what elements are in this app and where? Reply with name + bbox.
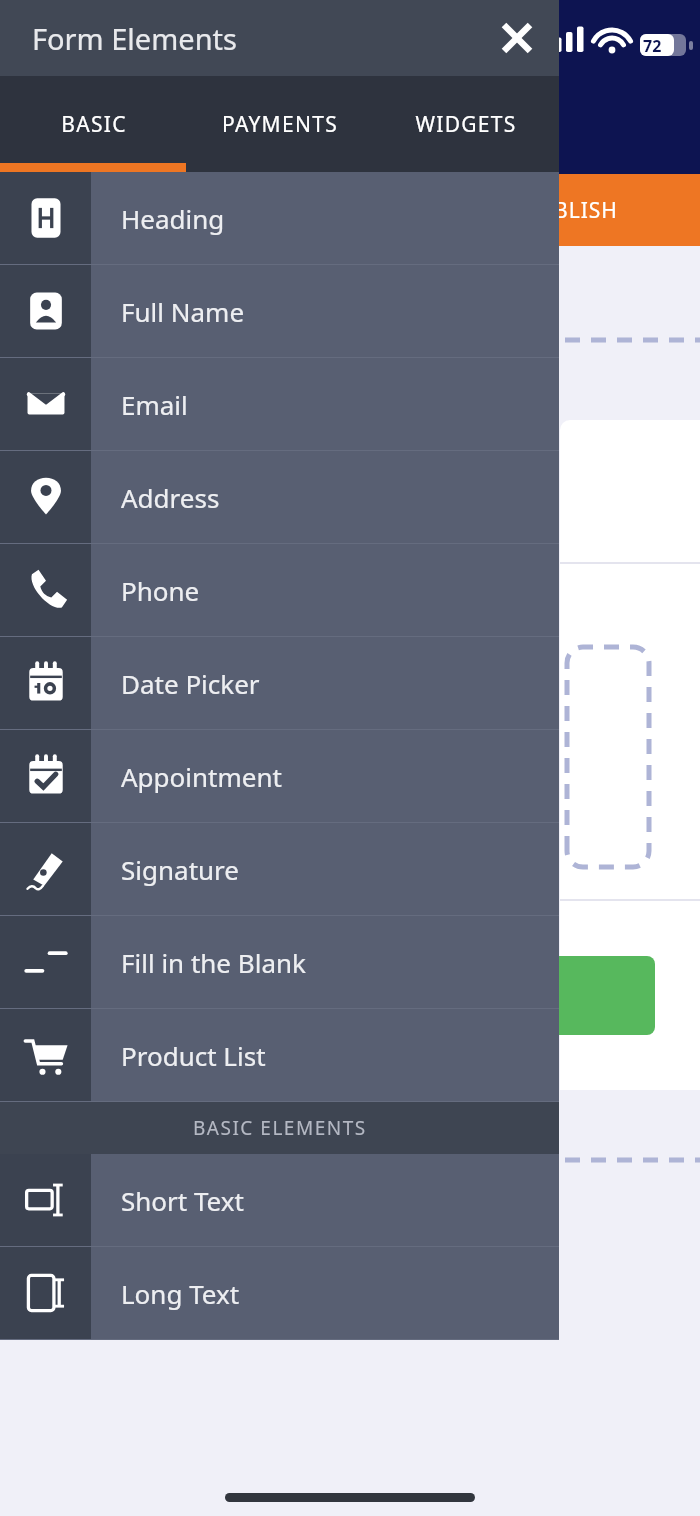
staticText: PAYMENTS xyxy=(222,110,338,139)
staticText: BASIC xyxy=(61,110,127,139)
staticText: Phone xyxy=(121,573,200,608)
button[interactable]: PUBLISH xyxy=(0,174,700,246)
button[interactable]: Phone xyxy=(0,544,559,636)
button[interactable]: Close xyxy=(489,10,545,66)
staticText: Short Text xyxy=(121,1183,244,1218)
staticText: Appointment xyxy=(121,759,282,794)
button[interactable]: BASIC xyxy=(0,76,187,172)
staticText: PUBLISH xyxy=(524,196,618,225)
button[interactable]: Full Name xyxy=(0,265,559,357)
button[interactable]: Address xyxy=(0,451,559,543)
button[interactable]: Heading xyxy=(0,172,559,264)
button[interactable]: Appointment xyxy=(0,730,559,822)
button[interactable]: Email xyxy=(0,358,559,450)
staticText: Form Elements xyxy=(32,19,237,58)
button[interactable]: Signature xyxy=(0,823,559,915)
staticText: Heading xyxy=(121,201,225,236)
staticText: 1:09 xyxy=(55,24,111,62)
button[interactable]: Date Picker xyxy=(0,637,559,729)
staticText: Date Picker xyxy=(121,666,260,701)
staticText: Long Text xyxy=(121,1276,240,1311)
button[interactable]: WIDGETS xyxy=(373,76,559,172)
staticText: Address xyxy=(121,480,220,515)
staticText: WIDGETS xyxy=(415,110,517,139)
button[interactable]: PAYMENTS xyxy=(187,76,373,172)
staticText: Signature xyxy=(121,852,239,887)
button[interactable]: Back xyxy=(30,88,92,150)
button[interactable]: Short Text xyxy=(0,1154,559,1246)
button[interactable]: Product List xyxy=(0,1009,559,1101)
staticText: 72 xyxy=(643,35,662,57)
staticText: BASIC ELEMENTS xyxy=(193,1115,367,1141)
button[interactable]: Fill in the Blank xyxy=(0,916,559,1008)
staticText: Product List xyxy=(121,1038,266,1073)
staticText: Fill in the Blank xyxy=(121,945,306,980)
staticText: Full Name xyxy=(121,294,245,329)
staticText: Email xyxy=(121,387,188,422)
button[interactable]: Long Text xyxy=(0,1247,559,1339)
